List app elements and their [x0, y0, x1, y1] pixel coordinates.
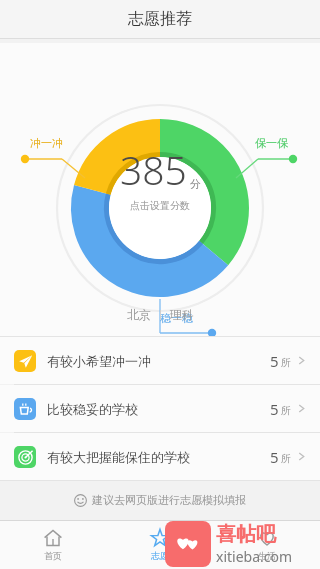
- staticText: 点击设置分数: [130, 199, 190, 212]
- staticText: 喜帖吧: [216, 522, 276, 547]
- button[interactable]: 385: [120, 143, 201, 196]
- staticText: 稳一稳: [160, 311, 193, 325]
- button[interactable]: 比较稳妥的学校: [0, 385, 320, 432]
- staticText: 建议去网页版进行志愿模拟填报: [92, 493, 246, 507]
- staticText: 保一保: [255, 136, 288, 150]
- staticText: 所: [281, 404, 291, 417]
- staticText: 所: [281, 356, 291, 369]
- staticText: 有较大把握能保住的学校: [47, 449, 190, 465]
- staticText: 生活: [258, 550, 276, 561]
- staticText: 5: [270, 351, 279, 371]
- staticText: 分: [190, 177, 201, 191]
- staticText: 理科: [170, 307, 194, 322]
- staticText: 冲一冲: [30, 136, 63, 150]
- button[interactable]: 生活: [213, 521, 320, 569]
- button[interactable]: 志愿: [106, 521, 213, 569]
- button[interactable]: 建议去网页版进行志愿模拟填报: [0, 481, 320, 519]
- staticText: 有较小希望冲一冲: [47, 353, 151, 369]
- staticText: 志愿: [151, 550, 169, 561]
- button[interactable]: 北京: [127, 307, 194, 322]
- staticText: 5: [270, 399, 279, 419]
- button[interactable]: 有较小希望冲一冲: [0, 337, 320, 384]
- staticText: 志愿推荐: [128, 9, 192, 29]
- staticText: 385: [120, 143, 187, 196]
- staticText: 5: [270, 447, 279, 467]
- staticText: 首页: [44, 550, 62, 561]
- staticText: 所: [281, 452, 291, 465]
- button[interactable]: 有较大把握能保住的学校: [0, 433, 320, 480]
- staticText: 比较稳妥的学校: [47, 401, 138, 417]
- staticText: 北京: [127, 307, 151, 322]
- button[interactable]: 首页: [0, 521, 106, 569]
- staticText: xitieba.com: [216, 547, 293, 566]
